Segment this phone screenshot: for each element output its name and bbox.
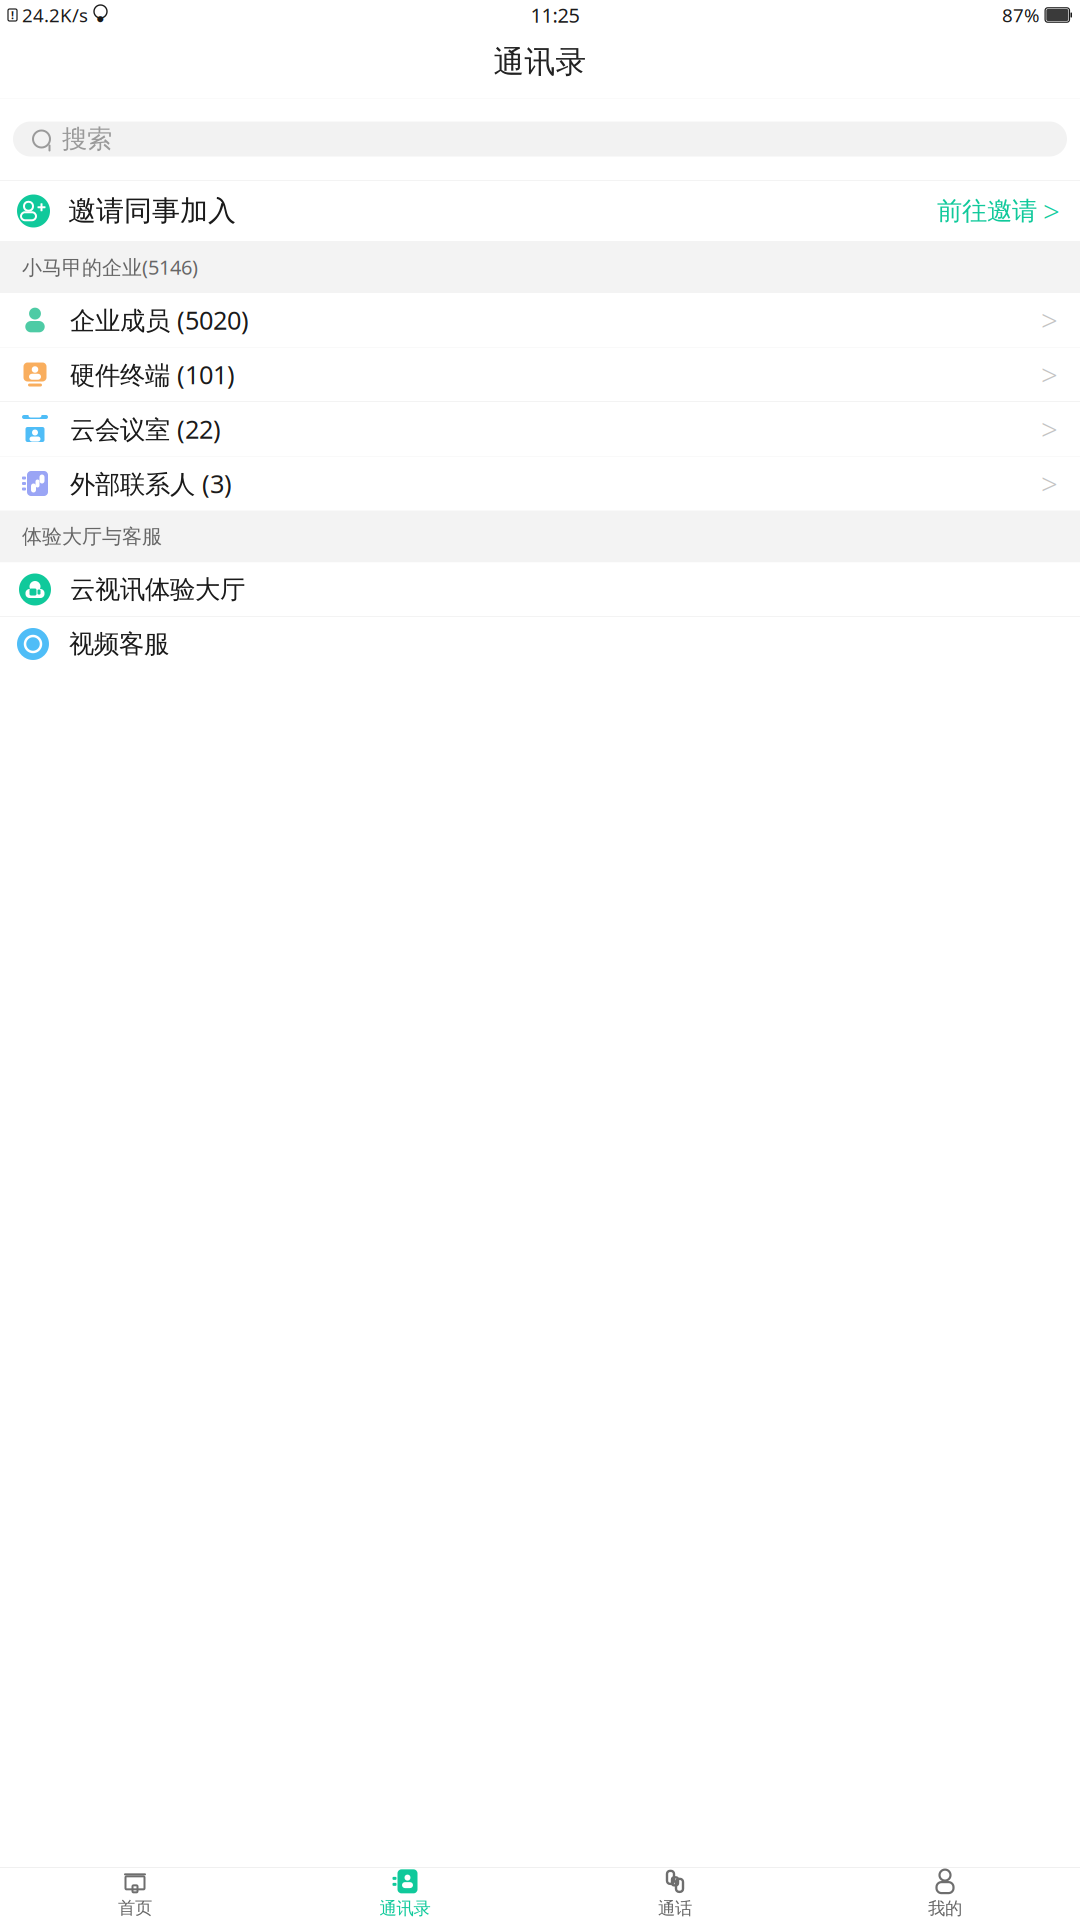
button[interactable]: 我的	[810, 1868, 1080, 1920]
button[interactable]: 📞	[0, 456, 1080, 510]
staticText: 我的	[928, 1898, 962, 1919]
staticText: >	[1041, 409, 1058, 448]
staticText: 通话	[658, 1898, 692, 1919]
staticText: >	[1043, 191, 1060, 230]
staticText: 87%	[1002, 3, 1040, 27]
button[interactable]: 云视讯体验大厅	[0, 562, 1080, 616]
button[interactable]: 首页	[0, 1868, 270, 1920]
staticText: 云会议室 (22)	[70, 412, 221, 446]
staticText: 体验大厅与客服	[22, 524, 162, 549]
staticText: ●	[97, 14, 104, 23]
staticText: 小马甲的企业(5146)	[22, 254, 198, 280]
button[interactable]: 视频客服	[0, 617, 1080, 671]
staticText: >	[1041, 464, 1058, 503]
staticText: 硬件终端 (101)	[70, 358, 235, 391]
button[interactable]: 企业成员 (5020)	[0, 293, 1080, 347]
staticText: 搜索	[62, 123, 112, 154]
staticText: 通讯录	[493, 43, 586, 81]
staticText: 企业成员 (5020)	[70, 303, 249, 337]
staticText: >	[1041, 300, 1058, 339]
button[interactable]: 云会议室 (22)	[0, 402, 1080, 456]
staticText: 外部联系人 (3)	[70, 467, 232, 500]
button[interactable]: 搜索	[13, 121, 1067, 156]
button[interactable]: 通讯录	[270, 1868, 540, 1920]
staticText: 通讯录	[379, 1898, 430, 1919]
staticText: !	[11, 8, 14, 22]
staticText: 11:25	[530, 2, 579, 28]
button[interactable]: 硬件终端 (101)	[0, 347, 1080, 401]
staticText: 24.2K/s	[22, 3, 88, 27]
button[interactable]: 通话	[540, 1868, 810, 1920]
staticText: 首页	[118, 1897, 152, 1919]
staticText: 视频客服	[69, 628, 169, 659]
staticText: 云视讯体验大厅	[70, 574, 245, 605]
staticText: >	[1041, 355, 1058, 394]
button[interactable]: 邀请同事加入	[0, 181, 1080, 241]
staticText: 前往邀请	[937, 195, 1037, 226]
staticText: 邀请同事加入	[68, 194, 236, 228]
